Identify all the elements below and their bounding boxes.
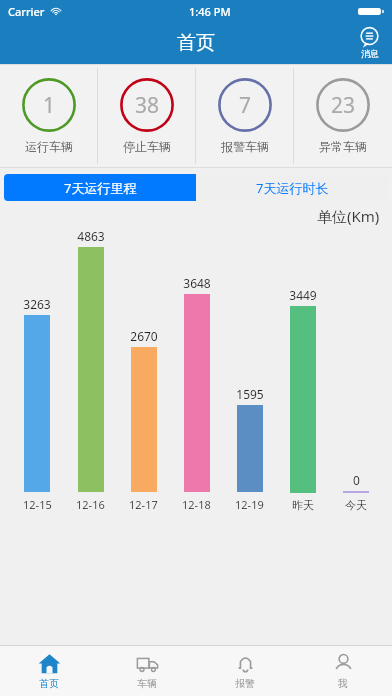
staticText: 12-17 [129, 497, 158, 512]
button[interactable]: 23 [294, 64, 392, 168]
staticText: 单位(Km) [317, 206, 380, 226]
staticText: 车辆 [137, 677, 157, 690]
staticText: 停止车辆 [123, 139, 171, 154]
staticText: 1595 [236, 386, 264, 402]
staticText: 2670 [130, 328, 158, 344]
staticText: 12-18 [182, 497, 211, 512]
button[interactable]: 0 [329, 229, 382, 512]
staticText: 3648 [183, 275, 211, 291]
staticText: 今天 [345, 498, 367, 512]
button[interactable]: 3648 [170, 228, 223, 512]
staticText: 1 [43, 91, 56, 120]
staticText: 消息 [361, 48, 379, 59]
staticText: 昨天 [292, 498, 314, 512]
staticText: 7天运行时长 [256, 179, 329, 197]
button[interactable]: 2670 [117, 228, 170, 512]
staticText: 首页 [177, 31, 215, 55]
staticText: 38 [135, 91, 160, 120]
button[interactable]: 7 [196, 64, 294, 168]
button[interactable]: 消息 [357, 27, 382, 59]
button[interactable]: 车辆 [98, 646, 196, 696]
staticText: 7 [239, 91, 252, 120]
staticText: 首页 [39, 677, 59, 690]
button[interactable]: 4863 [64, 228, 117, 512]
button[interactable]: 7天运行时长 [196, 174, 388, 201]
button[interactable]: 3449 [276, 229, 329, 512]
staticText: 报警 [235, 677, 255, 690]
staticText: 报警车辆 [221, 139, 269, 154]
button[interactable]: 3263 [10, 228, 64, 512]
button[interactable]: 报警 [196, 646, 294, 696]
staticText: 0 [353, 472, 360, 488]
staticText: 23 [331, 91, 356, 120]
staticText: 异常车辆 [319, 139, 367, 154]
button[interactable]: 我 [294, 646, 392, 696]
button[interactable]: 1595 [223, 228, 276, 512]
staticText: 我 [338, 677, 348, 690]
staticText: 12-15 [23, 497, 52, 512]
button[interactable]: 首页 [0, 646, 98, 696]
button[interactable]: 7天运行里程 [4, 174, 196, 201]
staticText: 7天运行里程 [64, 179, 137, 197]
staticText: 4863 [77, 228, 105, 244]
staticText: 12-16 [76, 497, 105, 512]
staticText: 3263 [23, 296, 51, 312]
staticText: 12-19 [235, 497, 264, 512]
staticText: 运行车辆 [25, 139, 73, 154]
staticText: Carrier [8, 4, 45, 19]
staticText: 3449 [289, 287, 317, 303]
staticText: 1:46 PM [189, 4, 231, 19]
button[interactable]: 38 [98, 64, 196, 168]
button[interactable]: 1 [0, 64, 98, 168]
